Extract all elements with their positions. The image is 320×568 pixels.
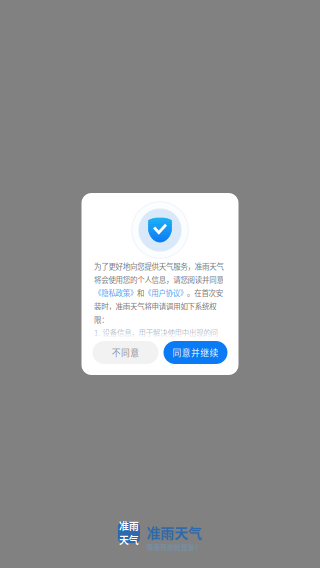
staticText: 1. 设备信息，用于解决使用中出现的问 xyxy=(94,327,218,338)
staticText: 《隐私政策》 xyxy=(94,287,137,298)
staticText: 准雨天气 xyxy=(146,522,202,542)
staticText: 装时，准雨天气将申请调用如下系统权 xyxy=(94,301,216,311)
button[interactable]: 不同意 xyxy=(92,341,158,364)
staticText: 《用户协议》 xyxy=(144,287,187,298)
staticText: 限： xyxy=(94,314,108,325)
staticText: 。在首次安 xyxy=(187,287,223,298)
button[interactable]: 同意并继续 xyxy=(163,341,227,364)
staticText: 不同意 xyxy=(112,346,139,359)
staticText: 准雨 xyxy=(119,518,139,533)
staticText: 将会使用您的个人信息，请您阅读并同意 xyxy=(94,274,223,285)
staticText: 同意并继续 xyxy=(172,346,219,359)
staticText: 为了更好地向您提供天气服务，准雨天气 xyxy=(94,261,223,272)
staticText: 和 xyxy=(137,287,144,298)
staticText: 降雨预测就是准！ xyxy=(146,542,202,552)
staticText: 天气 xyxy=(119,532,139,547)
